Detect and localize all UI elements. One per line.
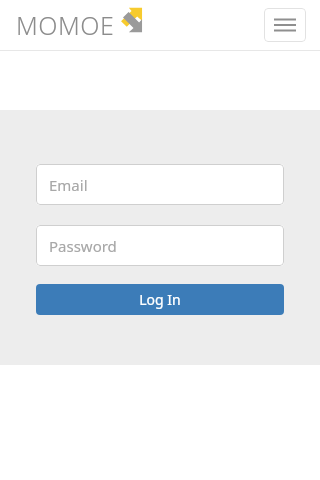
staticText: Email [49,175,88,195]
button[interactable]: Log In [36,284,284,315]
staticText: Log In [139,290,181,309]
button[interactable]: Password [36,225,284,266]
button[interactable]: MOMOE [16,6,144,44]
staticText: MOMOE [16,8,115,42]
button[interactable]: Email [36,164,284,205]
button[interactable]: Menu [264,8,306,42]
staticText: Password [49,236,117,256]
